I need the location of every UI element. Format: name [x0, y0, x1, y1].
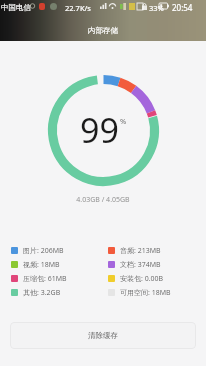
staticText: 内部存储 [88, 26, 118, 35]
button[interactable]: 安装包: 0.00B [108, 274, 206, 283]
staticText: 安装包: 0.00B [120, 274, 164, 283]
staticText: 压缩包: 61MB [23, 274, 67, 283]
button[interactable]: 文档: 374MB [108, 260, 206, 269]
button[interactable]: 音频: 213MB [108, 246, 206, 255]
button[interactable]: 图片: 206MB [11, 246, 108, 255]
staticText: 音频: 213MB [120, 246, 161, 255]
button[interactable]: 其他: 3.2GB [11, 288, 108, 297]
staticText: 22.7K/s [65, 3, 91, 13]
staticText: 图片: 206MB [23, 246, 64, 255]
staticText: % [120, 116, 127, 126]
button[interactable]: 视频: 18MB [11, 260, 108, 269]
button[interactable]: 清除缓存 [10, 322, 196, 349]
button[interactable]: 压缩包: 61MB [11, 274, 108, 283]
staticText: 清除缓存 [88, 331, 118, 340]
staticText: 20:54 [172, 2, 193, 13]
staticText: 中国电信 [1, 3, 31, 12]
staticText: 可用空间: 18MB [120, 288, 171, 297]
staticText: 99 [80, 107, 119, 153]
button[interactable]: 可用空间: 18MB [108, 288, 206, 297]
staticText: 其他: 3.2GB [23, 288, 61, 297]
staticText: 4.03GB / 4.05GB [0, 195, 206, 205]
staticText: 33% [149, 3, 164, 13]
staticText: 文档: 374MB [120, 260, 161, 269]
staticText: 视频: 18MB [23, 260, 60, 269]
